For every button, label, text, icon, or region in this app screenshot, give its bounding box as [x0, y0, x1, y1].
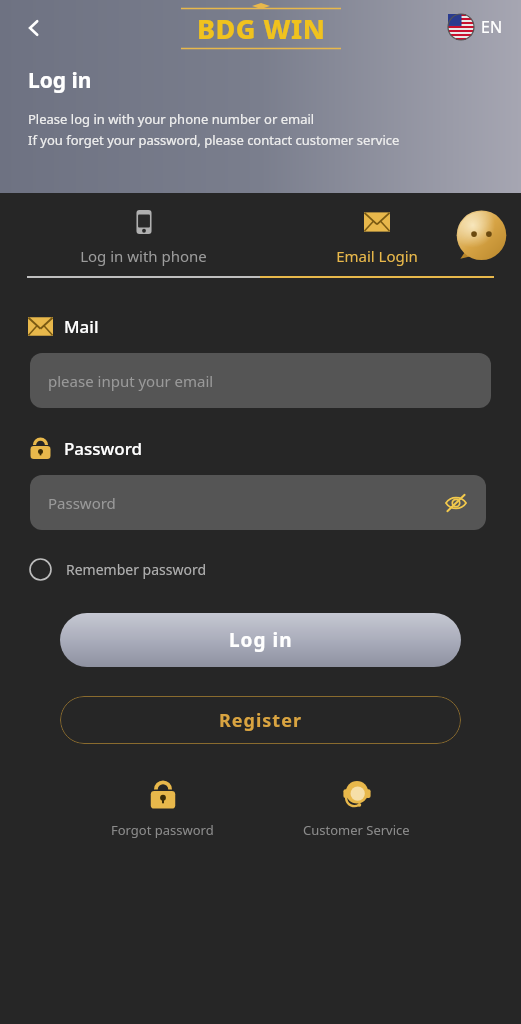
button[interactable]: please input your email — [30, 353, 491, 408]
staticText: Email Login — [336, 246, 418, 266]
staticText: If you forget your password, please cont… — [28, 131, 400, 149]
staticText: EN — [481, 16, 503, 38]
button[interactable]: Customer service chat — [445, 205, 513, 273]
button[interactable]: Log in — [60, 613, 461, 667]
staticText: BDG WIN — [197, 10, 326, 47]
staticText: Remember password — [66, 560, 207, 579]
button[interactable]: Log in with phone — [27, 197, 260, 276]
staticText: Please log in with your phone number or … — [28, 110, 315, 128]
button[interactable]: Email Login — [260, 197, 494, 276]
button[interactable]: Show password — [444, 491, 468, 515]
staticText: Forgot password — [111, 821, 214, 839]
staticText: Log in — [229, 627, 293, 653]
staticText: Log in — [28, 66, 92, 95]
button[interactable]: Password — [30, 475, 486, 530]
button[interactable]: EN — [444, 10, 507, 44]
button[interactable]: Remember password — [27, 554, 209, 585]
staticText: Mail — [64, 315, 99, 338]
button[interactable]: Forgot password — [105, 772, 220, 845]
button[interactable]: Customer Service — [297, 772, 416, 845]
staticText: Customer Service — [303, 821, 410, 839]
button[interactable]: Register — [60, 696, 461, 744]
staticText: Password — [64, 437, 143, 460]
staticText: please input your email — [48, 371, 214, 391]
staticText: Password — [48, 493, 116, 513]
staticText: Register — [219, 708, 302, 733]
button[interactable]: Back — [14, 8, 54, 48]
staticText: Log in with phone — [80, 246, 207, 266]
button[interactable]: BDG WIN logo — [181, 4, 341, 51]
